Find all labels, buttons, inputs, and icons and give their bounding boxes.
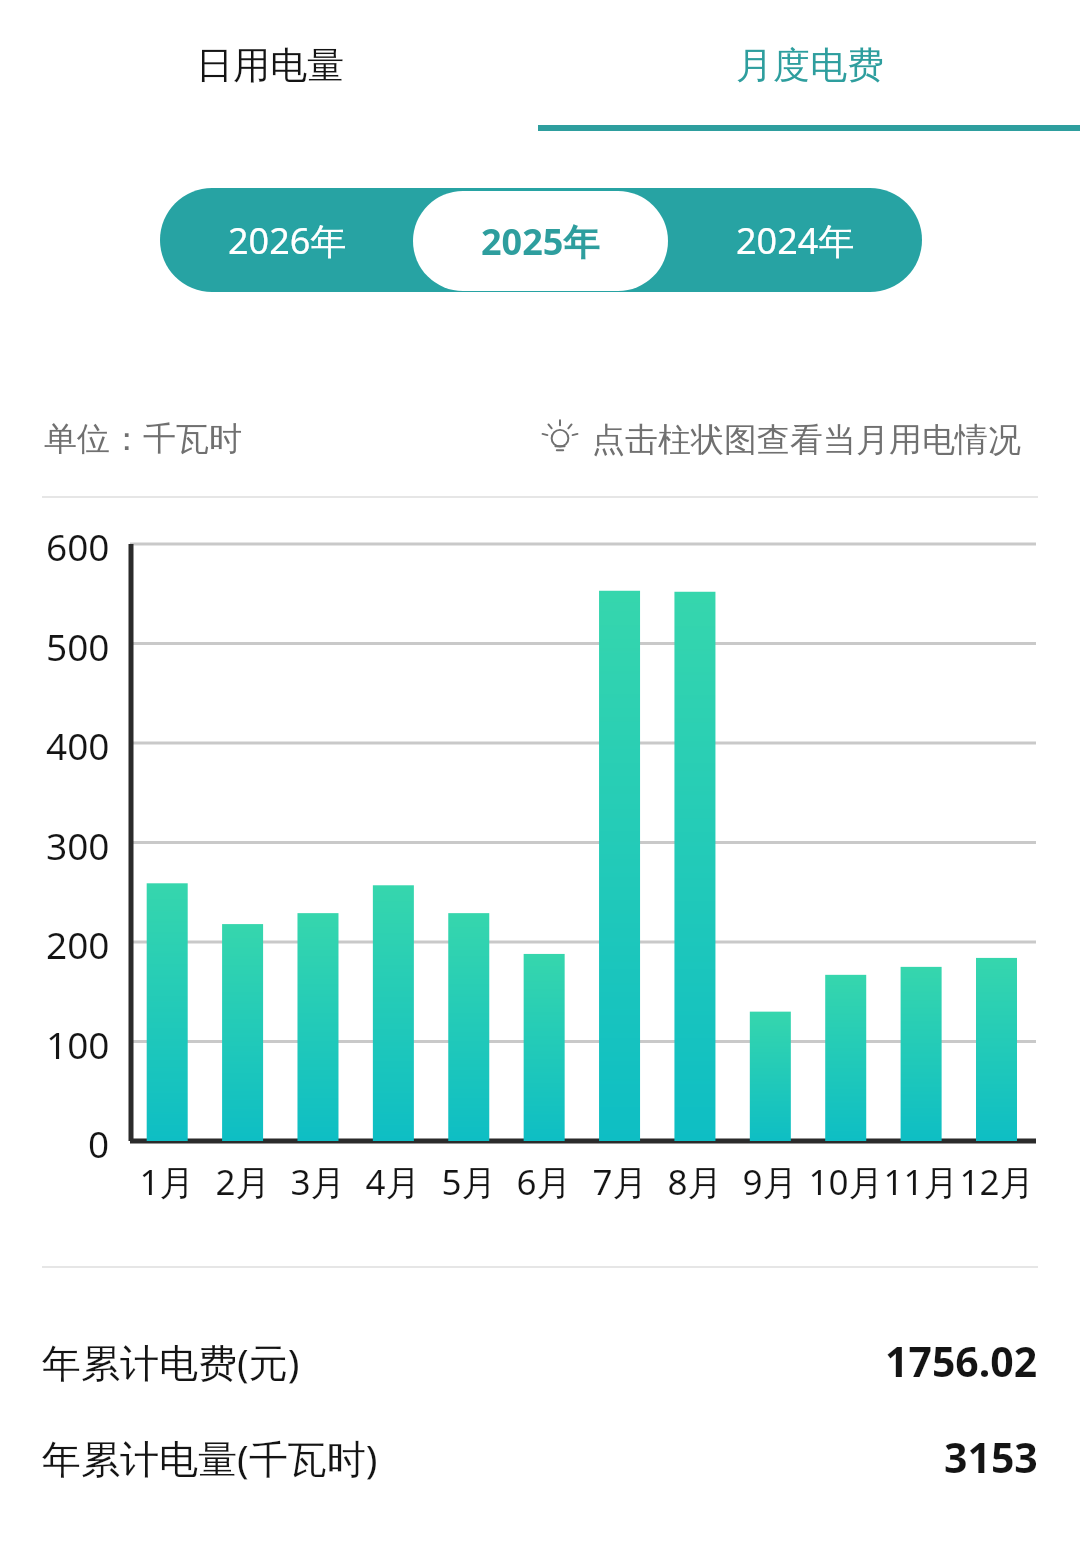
staticText: 2025年 [481, 217, 600, 266]
staticText: 300 [46, 820, 110, 870]
staticText: 点击柱状图查看当月用电情况 [592, 419, 1021, 461]
staticText: 日用电量 [196, 42, 344, 89]
staticText: 0 [88, 1118, 110, 1168]
staticText: 8月 [667, 1158, 723, 1206]
staticText: 500 [46, 621, 110, 671]
button[interactable]: 2026年 [160, 188, 414, 292]
staticText: 4月 [365, 1158, 421, 1206]
staticText: 3153 [944, 1429, 1038, 1485]
staticText: 1756.02 [885, 1333, 1038, 1389]
staticText: 9月 [742, 1158, 798, 1206]
staticText: 200 [46, 919, 110, 969]
staticText: 12月 [959, 1158, 1035, 1206]
staticText: 3月 [290, 1158, 346, 1206]
button[interactable]: 月度电费 [540, 0, 1080, 131]
button[interactable]: 2024年 [668, 188, 922, 292]
staticText: 2月 [215, 1158, 271, 1206]
staticText: 1月 [139, 1158, 195, 1206]
button[interactable]: 2025年 [413, 191, 668, 291]
staticText: 400 [46, 720, 110, 770]
staticText: 6月 [516, 1158, 572, 1206]
staticText: 11月 [883, 1158, 959, 1206]
button[interactable]: 提示 [538, 418, 1021, 462]
staticText: 100 [46, 1019, 110, 1069]
staticText: 10月 [808, 1158, 884, 1206]
staticText: 2026年 [228, 216, 347, 265]
button[interactable]: 年累计电量(千瓦时) [42, 1418, 1038, 1496]
staticText: 2024年 [736, 216, 855, 265]
staticText: 5月 [441, 1158, 497, 1206]
staticText: 7月 [592, 1158, 648, 1206]
staticText: 单位：千瓦时 [44, 418, 242, 460]
staticText: 年累计电量(千瓦时) [42, 1431, 378, 1484]
button[interactable]: 年累计电费(元) [42, 1322, 1038, 1400]
button[interactable]: 日用电量 [0, 0, 540, 131]
staticText: 月度电费 [736, 42, 884, 89]
staticText: 600 [46, 521, 110, 571]
staticText: 年累计电费(元) [42, 1335, 300, 1388]
